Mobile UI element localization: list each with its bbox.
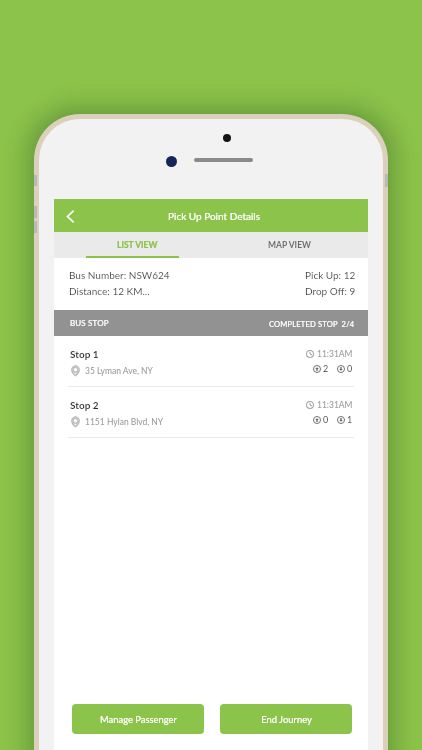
staticText: LIST VIEW (117, 240, 158, 250)
button[interactable]: End Journey (220, 704, 352, 734)
button[interactable]: Back (54, 200, 86, 232)
staticText: 11:31AM (317, 349, 353, 359)
staticText: 1 (347, 414, 353, 425)
staticText: 11:31AM (317, 400, 353, 410)
staticText: Stop 1 (70, 348, 99, 360)
button[interactable]: Stop 1 (54, 336, 368, 387)
staticText: MAP VIEW (268, 240, 311, 250)
staticText: 0 (323, 414, 329, 425)
staticText: 2 (323, 363, 329, 374)
staticText: End Journey (261, 714, 312, 725)
button[interactable]: Manage Passenger (72, 704, 204, 734)
staticText: 0 (347, 363, 353, 374)
staticText: BUS STOP (70, 318, 109, 328)
staticText: Pick Up Point Details (168, 210, 261, 222)
button[interactable]: MAP VIEW (211, 232, 368, 258)
staticText: 1151 Hylan Blvd, NY (85, 417, 164, 427)
staticText: COMPLETED STOP 2/4 (269, 319, 355, 328)
staticText: Distance: 12 KM... (69, 285, 150, 297)
staticText: Pick Up: 12 (305, 269, 356, 281)
staticText: Drop Off: 9 (305, 285, 356, 297)
button[interactable]: Stop 2 (54, 387, 368, 438)
staticText: Stop 2 (70, 399, 99, 411)
button[interactable]: LIST VIEW (54, 232, 211, 258)
staticText: Bus Number: NSW624 (69, 269, 170, 281)
staticText: Manage Passenger (100, 714, 177, 725)
staticText: 35 Lyman Ave, NY (85, 366, 153, 376)
